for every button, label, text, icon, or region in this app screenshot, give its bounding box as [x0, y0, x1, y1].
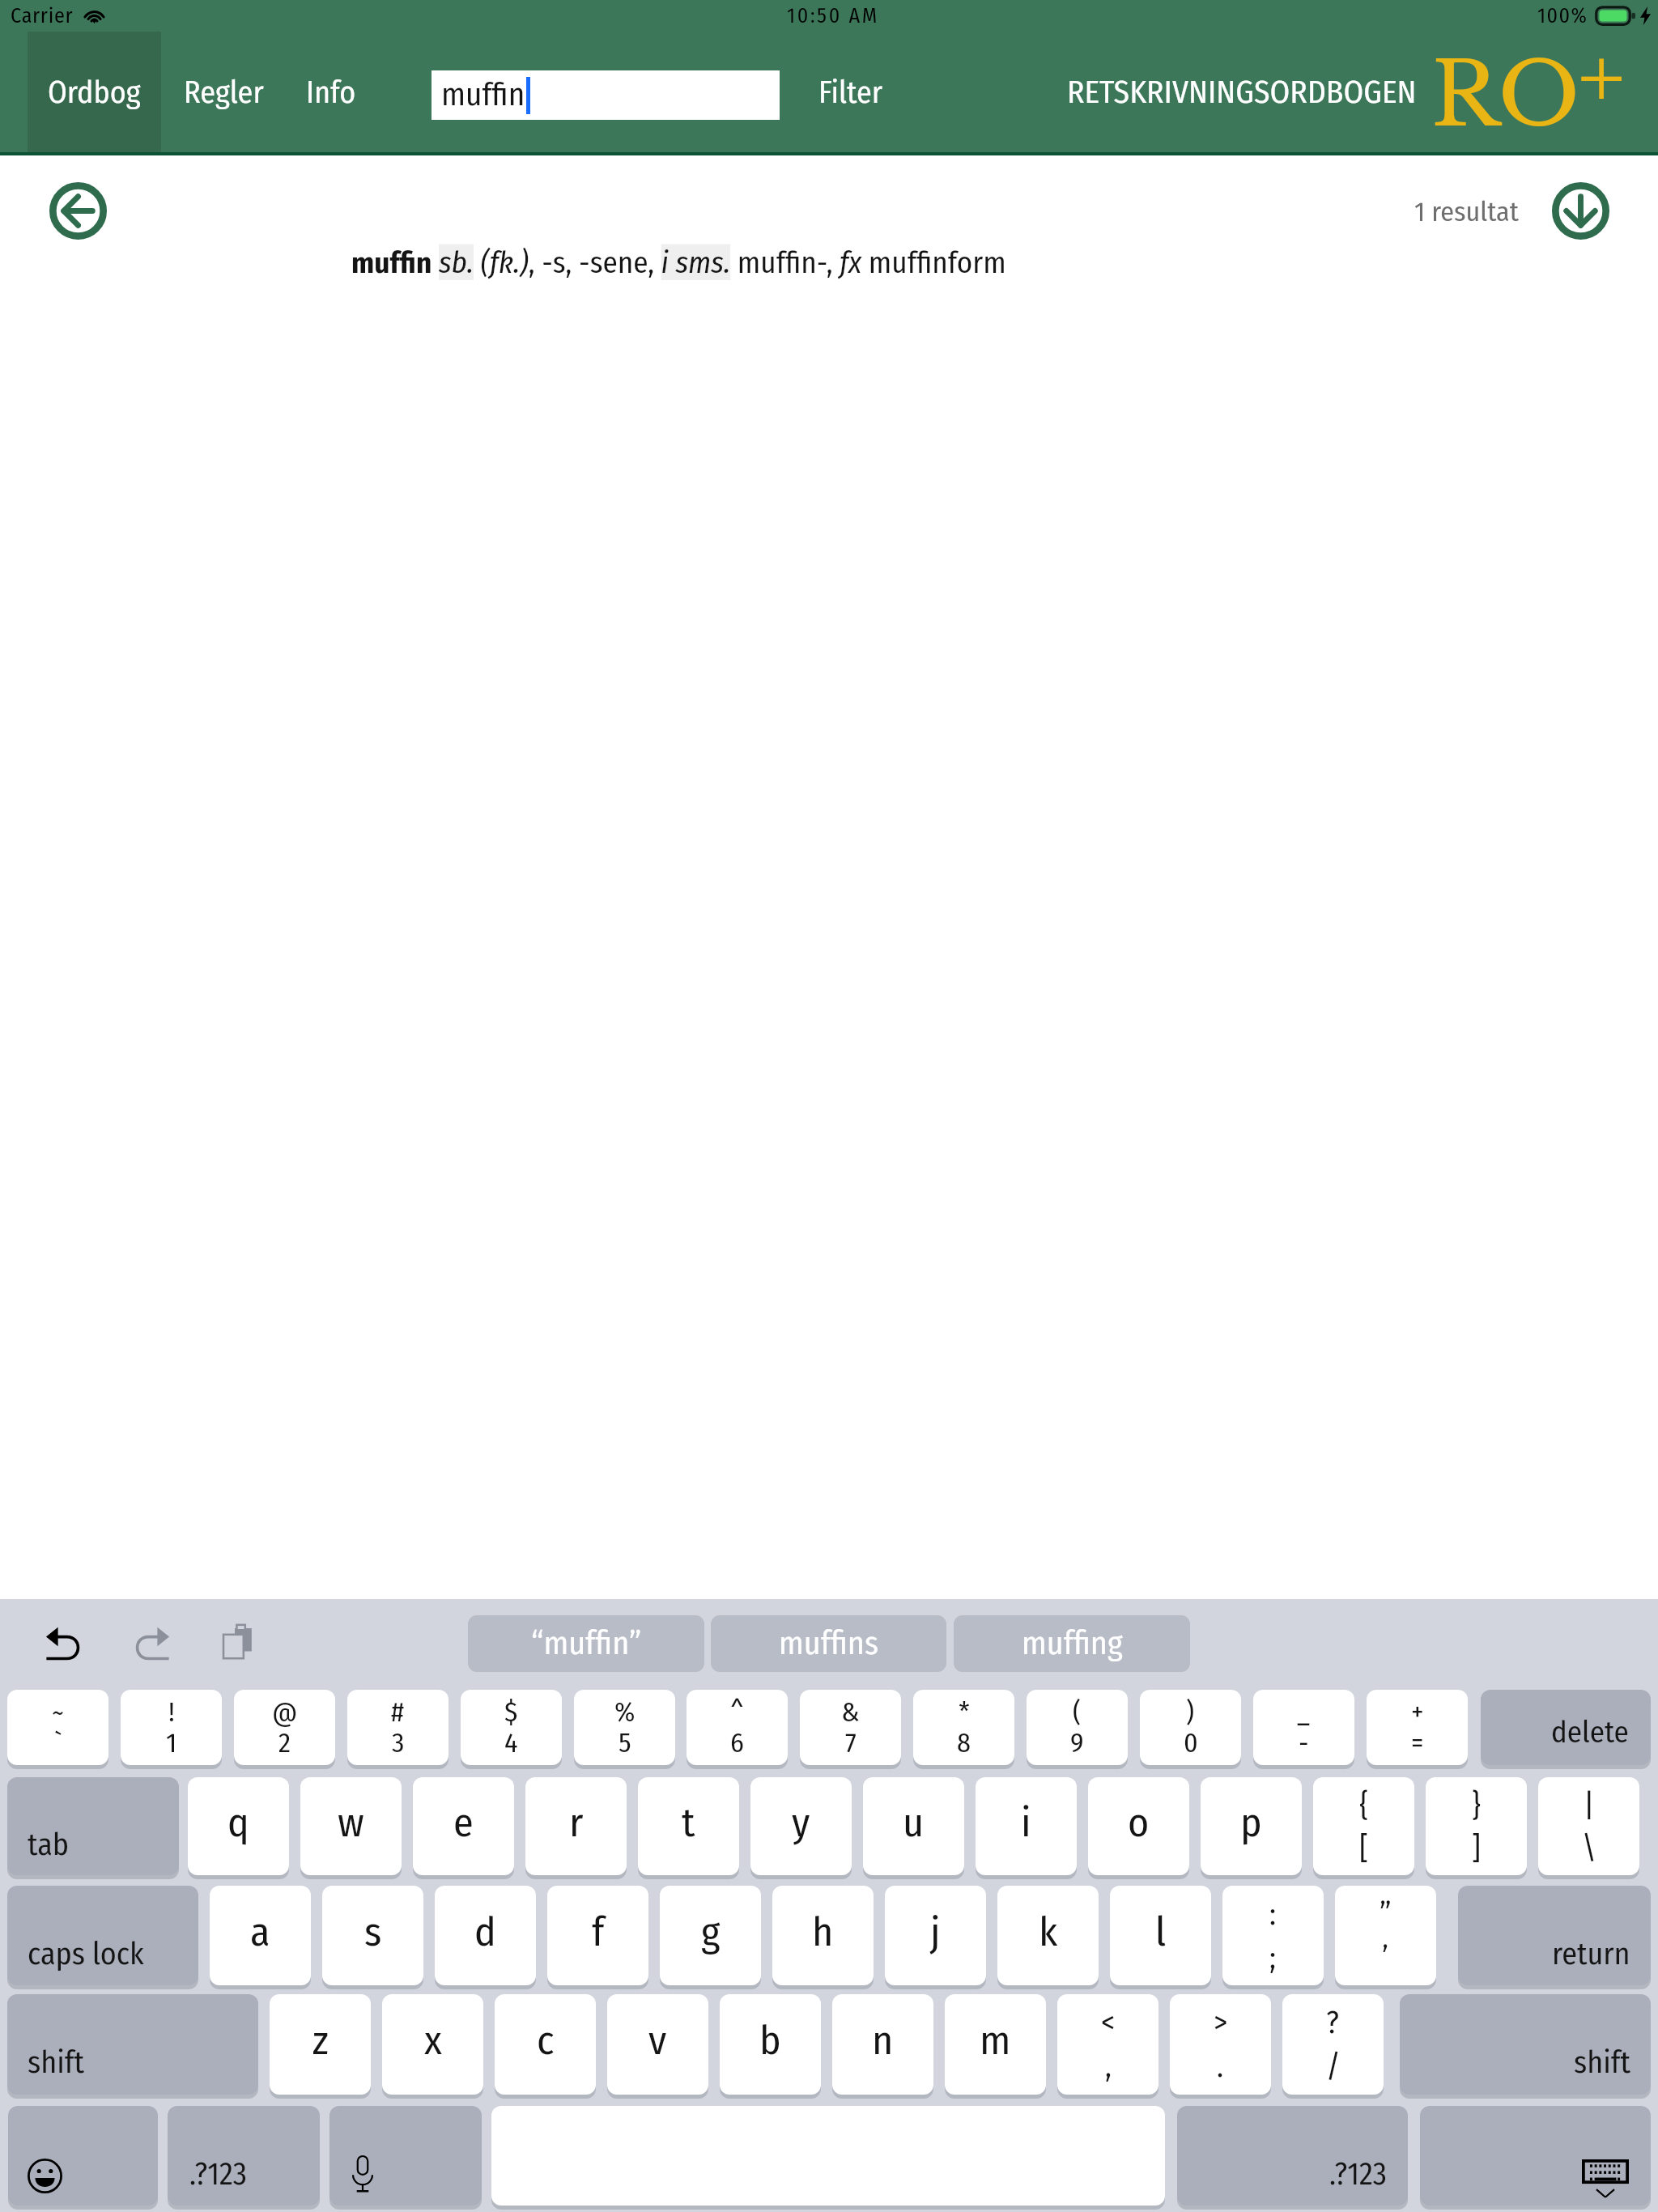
button[interactable]: +	[1367, 1690, 1468, 1765]
button[interactable]: r	[525, 1777, 627, 1875]
button[interactable]: #	[347, 1690, 449, 1765]
button[interactable]: Tilbage	[49, 182, 107, 240]
button[interactable]: RETSKRIVNINGSORDBOGEN	[1067, 32, 1417, 152]
button[interactable]: ~	[7, 1690, 108, 1765]
button[interactable]: muffins	[711, 1615, 946, 1672]
button[interactable]: $	[461, 1690, 562, 1765]
staticText: d	[474, 1908, 496, 1956]
button[interactable]: q	[188, 1777, 289, 1875]
button[interactable]: {	[1313, 1777, 1414, 1875]
button[interactable]: v	[607, 1994, 708, 2095]
button[interactable]: %	[574, 1690, 675, 1765]
staticText: 0	[1184, 1726, 1198, 1759]
staticText: ^	[730, 1695, 744, 1729]
button[interactable]: j	[885, 1886, 986, 1985]
button[interactable]: (	[1027, 1690, 1128, 1765]
staticText: :	[1269, 1895, 1277, 1933]
button[interactable]: y	[750, 1777, 852, 1875]
button[interactable]: >	[1170, 1994, 1271, 2095]
button[interactable]: @	[234, 1690, 335, 1765]
button[interactable]: muffing	[954, 1615, 1190, 1672]
button[interactable]: return	[1458, 1886, 1651, 1985]
button[interactable]: )	[1140, 1690, 1241, 1765]
staticText: %	[614, 1695, 636, 1729]
staticText: 6	[730, 1726, 744, 1759]
button[interactable]: o	[1088, 1777, 1189, 1875]
button[interactable]: _	[1253, 1690, 1354, 1765]
staticText: k	[1039, 1908, 1058, 1956]
staticText: o	[1128, 1798, 1150, 1847]
button[interactable]: Gentag	[133, 1627, 170, 1661]
staticText: -	[1299, 1726, 1309, 1759]
button[interactable]: x	[382, 1994, 483, 2095]
button[interactable]: Diktering	[329, 2106, 482, 2206]
button[interactable]: l	[1110, 1886, 1211, 1985]
button[interactable]: Filter	[810, 32, 891, 152]
staticText: +	[1411, 1695, 1424, 1729]
button[interactable]: k	[997, 1886, 1099, 1985]
button[interactable]: w	[300, 1777, 402, 1875]
staticText: =	[1411, 1726, 1424, 1759]
staticText: Filter	[818, 74, 882, 111]
button[interactable]: muffin	[432, 70, 780, 120]
button[interactable]: Ordbog	[28, 32, 161, 152]
button[interactable]: m	[945, 1994, 1046, 2095]
button[interactable]: u	[863, 1777, 964, 1875]
button[interactable]: e	[413, 1777, 514, 1875]
button[interactable]: “muffin”	[468, 1615, 704, 1672]
staticText: u	[903, 1798, 925, 1847]
button[interactable]: .?123	[1177, 2106, 1408, 2206]
button[interactable]: p	[1201, 1777, 1302, 1875]
button[interactable]: t	[638, 1777, 739, 1875]
button[interactable]: b	[720, 1994, 821, 2095]
button[interactable]: !	[121, 1690, 222, 1765]
button[interactable]: z	[270, 1994, 371, 2095]
staticText: 2	[278, 1726, 291, 1759]
button[interactable]: a	[210, 1886, 311, 1985]
staticText: g	[701, 1908, 721, 1956]
button[interactable]: Regler	[168, 32, 280, 152]
button[interactable]: ^	[687, 1690, 788, 1765]
staticText: 9	[1070, 1726, 1084, 1759]
button[interactable]: shift	[7, 1994, 258, 2095]
staticText: 10:50 AM	[787, 3, 879, 28]
button[interactable]: g	[660, 1886, 761, 1985]
button[interactable]: Info	[289, 32, 373, 152]
staticText: muffin sb. (fk.), -s, -sene, i sms. muff…	[351, 245, 1006, 280]
button[interactable]: :	[1222, 1886, 1324, 1985]
staticText: ’	[1382, 1939, 1389, 1976]
button[interactable]: caps lock	[7, 1886, 198, 1985]
button[interactable]: Hent flere	[1552, 182, 1609, 240]
button[interactable]: h	[772, 1886, 874, 1985]
button[interactable]: Skjul tastatur	[1420, 2106, 1651, 2206]
staticText: i	[1021, 1798, 1031, 1847]
button[interactable]: &	[800, 1690, 901, 1765]
button[interactable]: ”	[1335, 1886, 1436, 1985]
staticText: 1 resultat	[1414, 195, 1519, 228]
staticText: delete	[1551, 1714, 1629, 1750]
staticText: !	[168, 1695, 175, 1729]
button[interactable]: <	[1057, 1994, 1158, 2095]
button[interactable]: n	[832, 1994, 933, 2095]
staticText: _	[1297, 1695, 1311, 1729]
staticText: ,	[1105, 2048, 1112, 2085]
button[interactable]: .?123	[168, 2106, 320, 2206]
button[interactable]: RO	[1431, 41, 1642, 162]
button[interactable]: *	[913, 1690, 1014, 1765]
button[interactable]: i	[976, 1777, 1077, 1875]
button[interactable]: Emoji	[8, 2106, 158, 2206]
button[interactable]: ?	[1282, 1994, 1384, 2095]
button[interactable]: tab	[7, 1777, 179, 1875]
button[interactable]: d	[435, 1886, 536, 1985]
button[interactable]: s	[322, 1886, 423, 1985]
button[interactable]: Fortryd	[45, 1627, 83, 1661]
button[interactable]: }	[1426, 1777, 1527, 1875]
button[interactable]: Indsaet	[222, 1623, 254, 1661]
button[interactable]: f	[547, 1886, 648, 1985]
button[interactable]: |	[1538, 1777, 1639, 1875]
button[interactable]: shift	[1400, 1994, 1651, 2095]
button[interactable]: c	[495, 1994, 596, 2095]
staticText: muffin	[441, 76, 525, 114]
button[interactable]: delete	[1481, 1690, 1651, 1765]
